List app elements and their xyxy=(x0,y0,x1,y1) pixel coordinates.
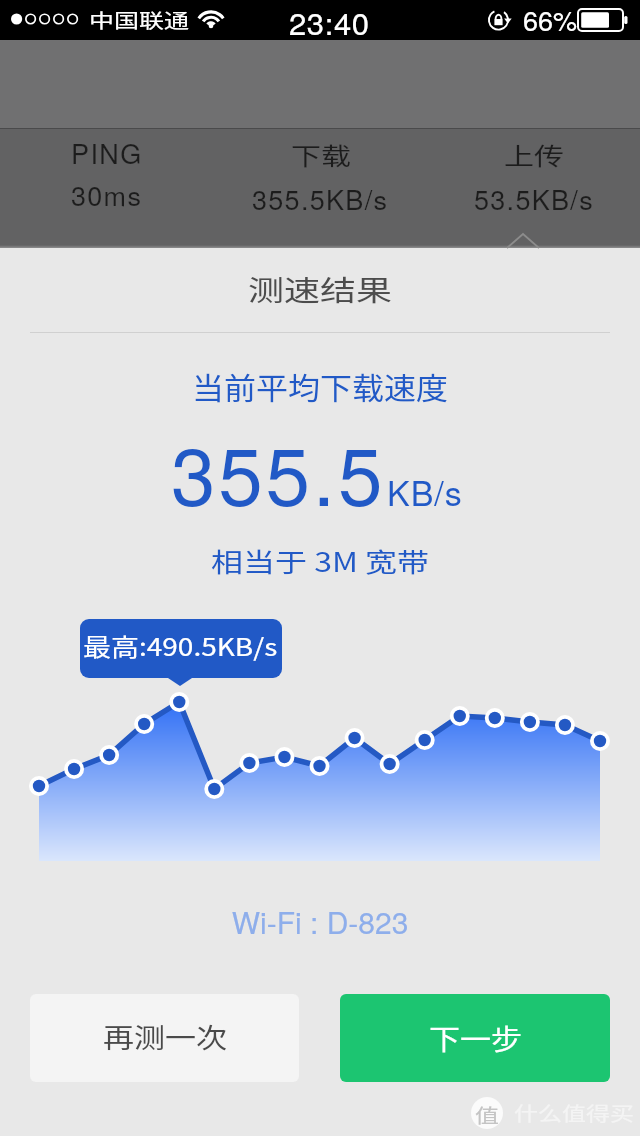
staticText: 什么值得买 xyxy=(514,1098,634,1126)
other: Wi-Fi xyxy=(197,8,225,30)
staticText: 66% xyxy=(523,0,578,39)
button[interactable]: 下一步 xyxy=(340,994,610,1082)
other: Battery 66 percent xyxy=(578,8,628,32)
staticText: 下载 xyxy=(291,137,351,172)
staticText: KB/s xyxy=(387,467,463,516)
staticText: PING xyxy=(71,133,143,172)
button[interactable]: 再测一次 xyxy=(30,994,299,1082)
button[interactable]: Expand upload details xyxy=(500,220,546,248)
staticText: Wi-Fi : D-823 xyxy=(0,900,640,943)
staticText: 再测一次 xyxy=(103,1017,227,1056)
staticText: 355.5KB/s xyxy=(252,179,389,218)
staticText: 测速结果 xyxy=(0,267,640,309)
staticText: 最高:490.5KB/s xyxy=(83,628,278,663)
staticText: 23:40 xyxy=(289,0,370,39)
staticText: 30ms xyxy=(71,175,143,214)
staticText: 中国联通 xyxy=(89,5,190,33)
staticText: 下一步 xyxy=(429,1017,522,1058)
staticText: 相当于 3M 宽带 xyxy=(0,541,640,579)
staticText: 53.5KB/s xyxy=(474,179,594,218)
staticText: 355.5 xyxy=(171,414,386,529)
staticText: 当前平均下载速度 xyxy=(0,365,640,407)
staticText: 上传 xyxy=(504,137,564,172)
other: Rotation lock xyxy=(487,7,513,33)
staticText: 值 xyxy=(475,1100,499,1126)
